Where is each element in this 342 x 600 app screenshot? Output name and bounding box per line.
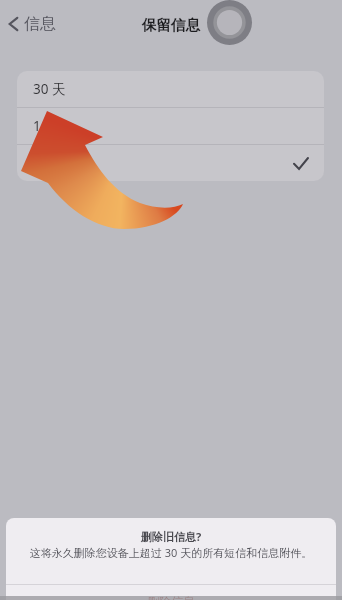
staticText: 这将永久删除您设备上超过 30 天的所有短信和信息附件。 bbox=[6, 545, 336, 560]
button[interactable]: 永久 bbox=[17, 145, 324, 181]
staticText: 1 年 bbox=[33, 117, 58, 135]
other: Selected bbox=[294, 158, 308, 169]
staticText: 永久 bbox=[33, 155, 60, 172]
button[interactable]: 1 年 bbox=[17, 108, 324, 144]
button[interactable]: 信息 bbox=[7, 12, 58, 36]
button[interactable]: 30 天 bbox=[17, 71, 324, 107]
staticText: 30 天 bbox=[33, 80, 66, 98]
staticText: 保留信息 bbox=[142, 16, 200, 34]
staticText: 信息 bbox=[24, 14, 56, 34]
staticText: 删除信息 bbox=[147, 594, 195, 600]
button[interactable]: 删除信息 bbox=[6, 585, 336, 600]
staticText: 删除旧信息? bbox=[6, 529, 336, 544]
